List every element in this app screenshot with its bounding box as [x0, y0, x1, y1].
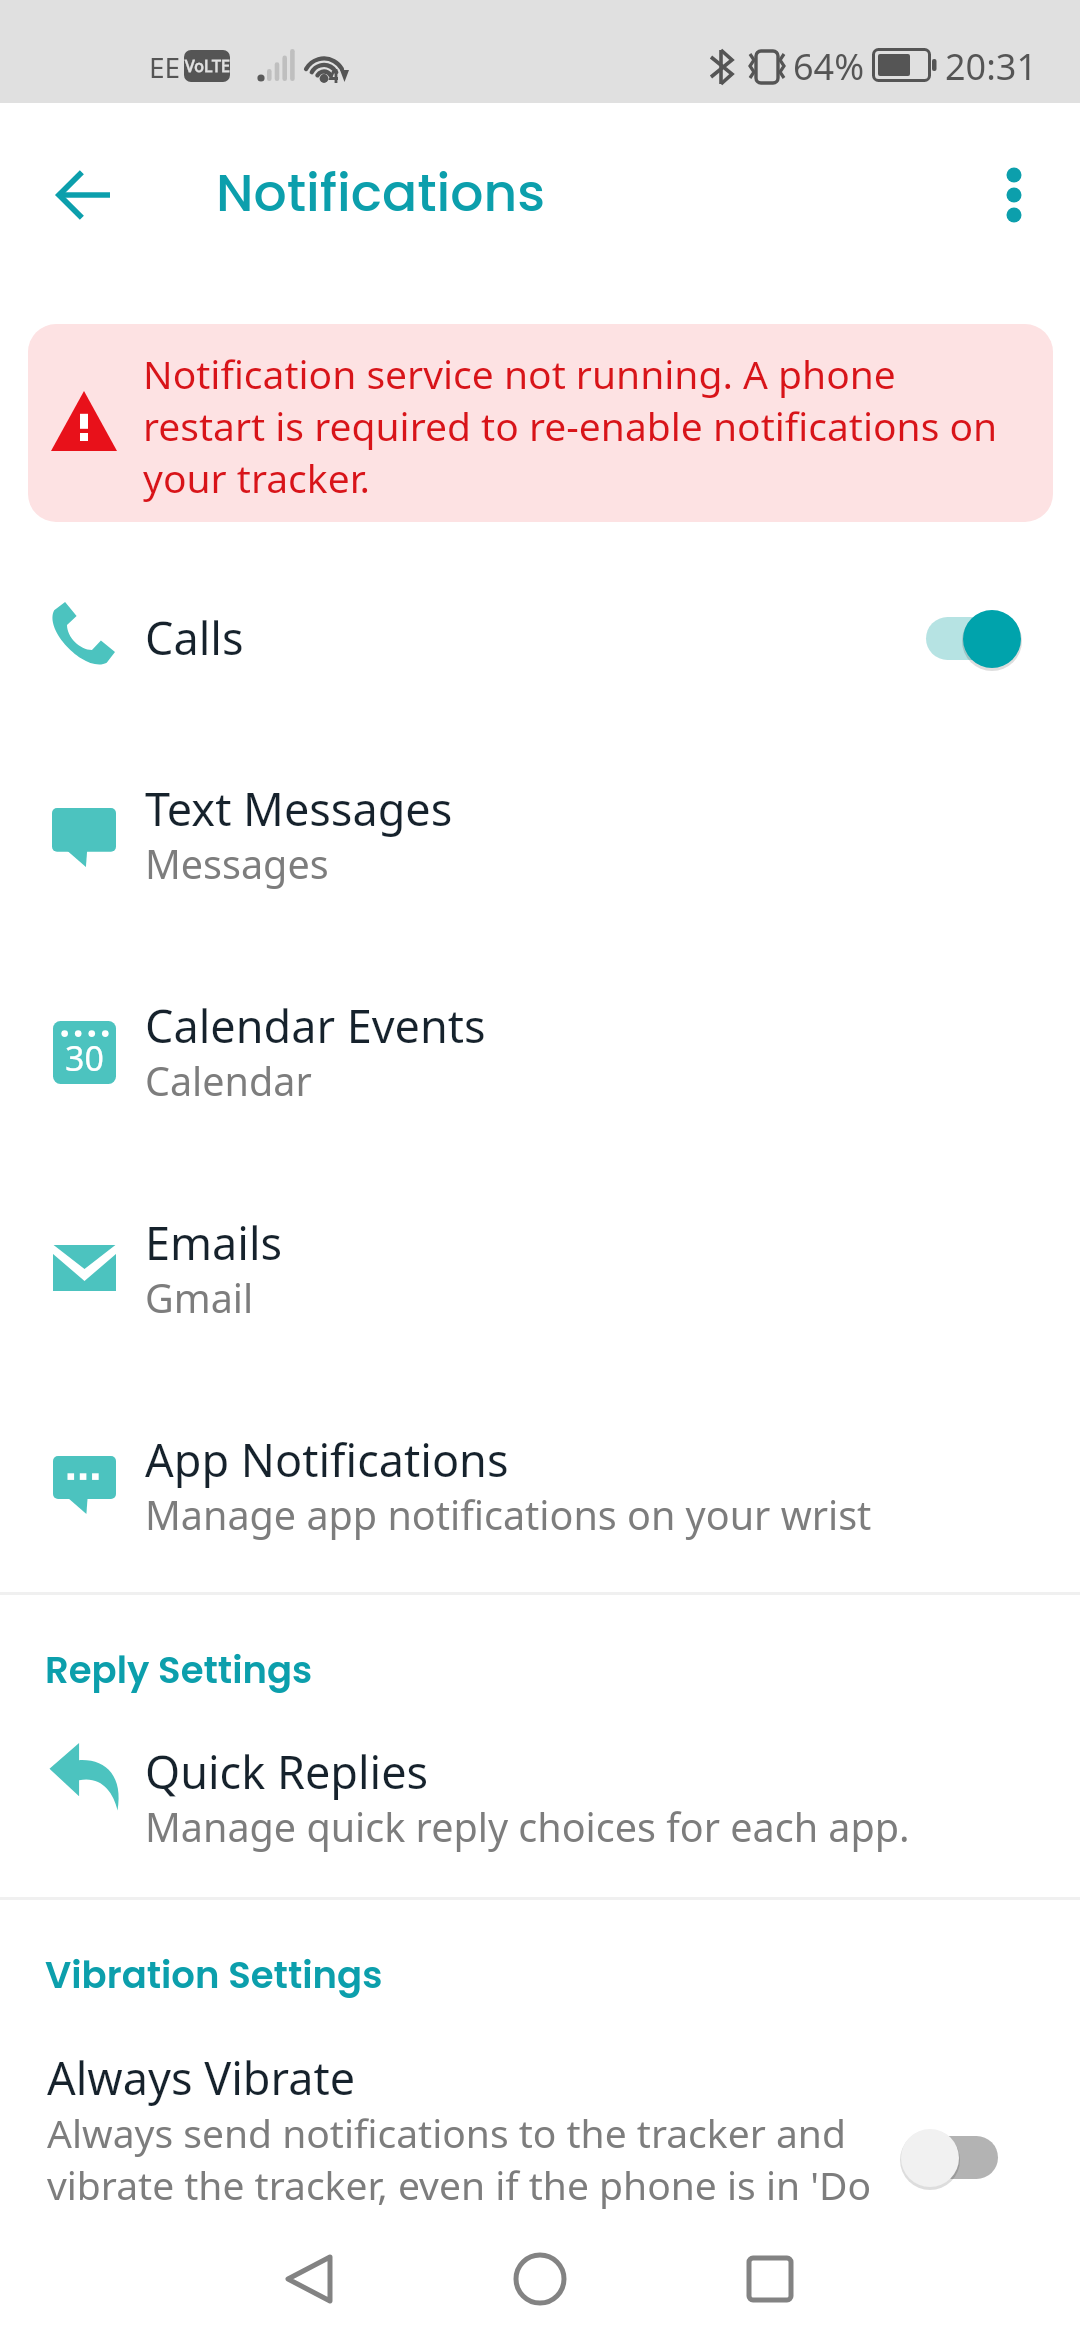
button[interactable]: Text Messages [0, 777, 1080, 994]
button[interactable]: Always Vibrate [0, 2040, 1080, 2220]
button[interactable]: Always vibrate toggle [900, 2128, 1000, 2190]
button[interactable]: Quick Replies [0, 1740, 1080, 1957]
staticText: Always send notifications to the tracker… [47, 2106, 927, 2211]
button[interactable]: Emails [0, 1211, 1080, 1428]
button[interactable]: Home [480, 2229, 600, 2329]
staticText: VoLTE [185, 55, 230, 77]
button[interactable]: Calls toggle [924, 609, 1022, 669]
button[interactable]: 30 [0, 994, 1080, 1211]
button[interactable]: Back [34, 145, 134, 245]
staticText: Manage app notifications on your wrist [145, 1488, 872, 1542]
staticText: Manage quick reply choices for each app. [145, 1800, 910, 1854]
staticText: App Notifications [145, 1429, 509, 1490]
staticText: Emails [145, 1212, 283, 1273]
staticText: Text Messages [145, 778, 453, 839]
button[interactable]: App Notifications [0, 1428, 1080, 1645]
staticText: Calendar Events [145, 995, 486, 1056]
staticText: Notification service not running. A phon… [143, 347, 1009, 504]
button[interactable]: Calls [0, 560, 1080, 777]
staticText: Always Vibrate [47, 2047, 356, 2108]
staticText: Calendar [145, 1054, 312, 1108]
staticText: 30 [65, 1035, 104, 1081]
button[interactable]: Notification service not running. A phon… [28, 324, 1053, 522]
staticText: Calls [145, 607, 244, 668]
staticText: Notifications [216, 156, 545, 229]
staticText: Messages [145, 837, 329, 891]
staticText: 20:31 [945, 42, 1038, 91]
staticText: Vibration Settings [45, 1949, 383, 2001]
button[interactable]: Back [248, 2229, 368, 2329]
staticText: Reply Settings [45, 1644, 313, 1696]
staticText: EE [149, 48, 181, 86]
staticText: 64% [793, 42, 865, 91]
button[interactable]: Recent apps [710, 2229, 830, 2329]
staticText: Quick Replies [145, 1741, 429, 1802]
staticText: Gmail [145, 1271, 254, 1325]
button[interactable]: More options [964, 145, 1064, 245]
